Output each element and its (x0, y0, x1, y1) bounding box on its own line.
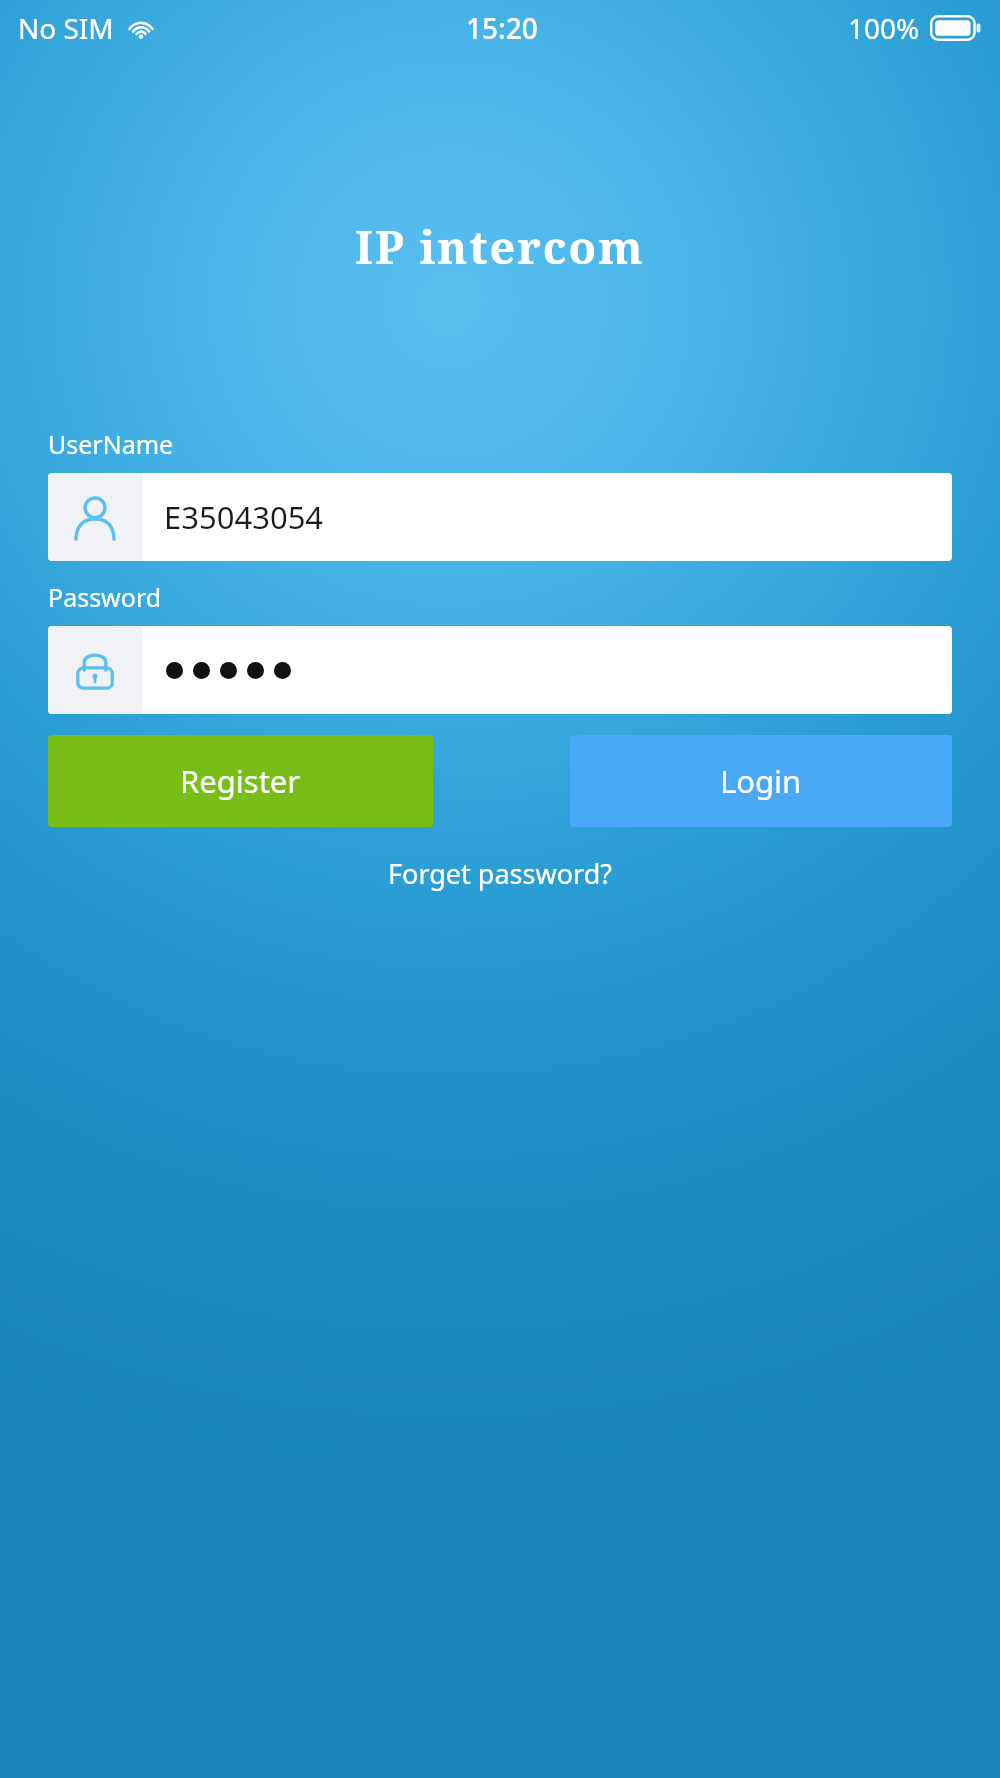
staticText: Register (180, 760, 301, 802)
button[interactable]: Forget password? (374, 847, 626, 900)
button[interactable]: E35043054 (48, 473, 952, 561)
staticText: E35043054 (164, 496, 324, 538)
staticText: 15:20 (466, 9, 538, 47)
staticText: No SIM (18, 9, 114, 47)
button[interactable]: Register (48, 735, 433, 827)
staticText: IP intercom (355, 216, 645, 277)
staticText: Login (720, 760, 802, 802)
staticText: UserName (48, 427, 174, 461)
staticText: Password (48, 580, 162, 614)
staticText: 100% (848, 9, 920, 47)
staticText: Forget password? (388, 855, 612, 892)
button[interactable] (48, 626, 952, 714)
button[interactable]: Login (570, 735, 952, 827)
